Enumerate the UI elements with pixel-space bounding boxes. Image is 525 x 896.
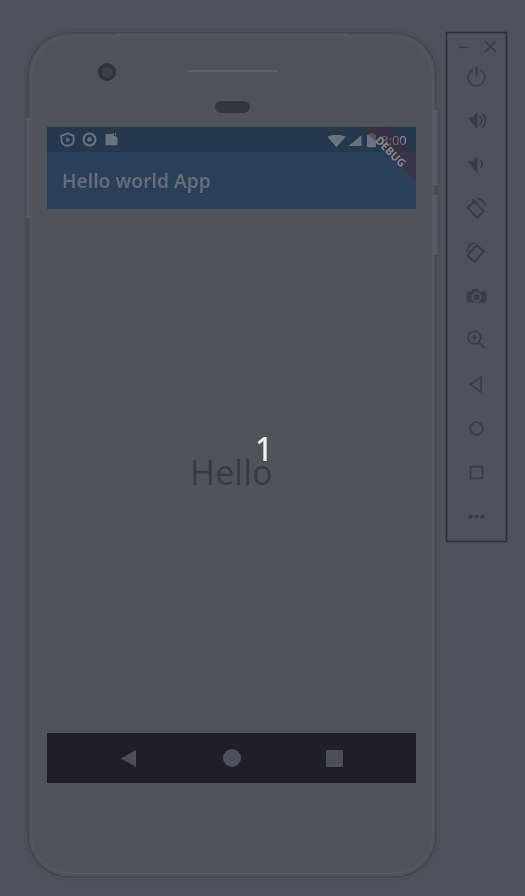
button[interactable]: Zoom (461, 325, 491, 355)
staticText: Hello (190, 449, 273, 495)
staticText: 8:00 (381, 131, 407, 149)
button[interactable]: Back (102, 733, 155, 783)
button[interactable]: More (461, 501, 491, 531)
button[interactable]: Volume down (461, 149, 491, 179)
button[interactable]: Close (482, 38, 499, 55)
staticText: Hello world App (62, 167, 211, 193)
button[interactable]: Minimize (455, 39, 471, 55)
button[interactable]: Rotate right (461, 237, 491, 267)
button[interactable]: Overview (461, 457, 491, 487)
button[interactable]: Volume up (461, 105, 491, 135)
button[interactable]: Hello world App (47, 152, 416, 209)
button[interactable]: Take screenshot (461, 281, 491, 311)
staticText: 1 (255, 427, 274, 471)
button[interactable]: Recent apps (308, 733, 361, 783)
button[interactable]: Back (461, 369, 491, 399)
button[interactable]: Power (461, 61, 491, 91)
button[interactable]: Rotate left (461, 193, 491, 223)
button[interactable]: Home (461, 413, 491, 443)
button[interactable]: Home (205, 733, 258, 783)
staticText: DEBUG (372, 133, 410, 170)
